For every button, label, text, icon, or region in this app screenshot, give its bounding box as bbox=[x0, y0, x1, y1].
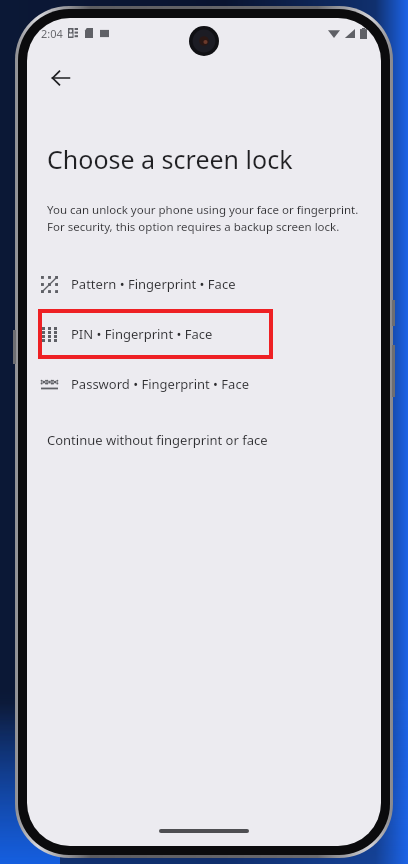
button[interactable]: PIN • Fingerprint • Face bbox=[27, 309, 381, 359]
staticText: Password • Fingerprint • Face bbox=[71, 375, 249, 393]
button[interactable]: Pattern • Fingerprint • Face bbox=[27, 259, 381, 309]
staticText: Choose a screen lock bbox=[47, 142, 293, 176]
staticText: Continue without fingerprint or face bbox=[47, 431, 268, 449]
button[interactable]: Back bbox=[41, 58, 81, 98]
staticText: Pattern • Fingerprint • Face bbox=[71, 275, 236, 293]
button[interactable]: Password • Fingerprint • Face bbox=[27, 359, 381, 409]
button[interactable]: Continue without fingerprint or face bbox=[27, 423, 381, 457]
staticText: PIN • Fingerprint • Face bbox=[71, 325, 213, 343]
staticText: 2:04 bbox=[41, 26, 63, 41]
staticText: You can unlock your phone using your fac… bbox=[47, 202, 359, 235]
